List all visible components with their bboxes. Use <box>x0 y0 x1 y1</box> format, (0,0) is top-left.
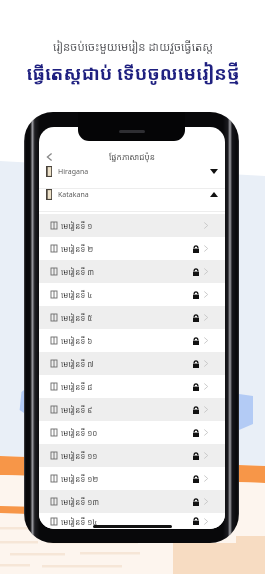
button[interactable]: មេរៀនទី ៩ <box>39 398 225 421</box>
button[interactable]: មេរៀនទី ៧ <box>39 352 225 375</box>
staticText: មេរៀនទី ២ <box>61 243 94 254</box>
button[interactable]: មេរៀនទី ៤ <box>39 283 225 306</box>
staticText: Katakana <box>58 190 89 200</box>
button[interactable]: Back <box>42 149 57 164</box>
staticText: មេរៀនទី ៩ <box>61 404 93 415</box>
button[interactable]: មេរៀនទី ៥ <box>39 306 225 329</box>
staticText: មេរៀនទី ៣ <box>61 266 95 277</box>
button[interactable]: មេរៀនទី ១ <box>39 214 225 237</box>
button[interactable]: មេរៀនទី ៦ <box>39 329 225 352</box>
staticText: មេរៀនទី ១២ <box>61 473 99 484</box>
button[interactable]: មេរៀនទី ១៤ <box>39 513 225 529</box>
button[interactable]: មេរៀនទី ១២ <box>39 467 225 490</box>
staticText: Hiragana <box>58 167 89 177</box>
button[interactable]: Katakana <box>39 189 225 212</box>
staticText: មេរៀនទី ៦ <box>61 335 93 346</box>
button[interactable]: មេរៀនទី ១៣ <box>39 490 225 513</box>
staticText: មេរៀនទី ៨ <box>61 381 93 392</box>
staticText: រៀនចប់ចេះមួយមេរៀន ដាយវួចធ្វើតេស្ត <box>53 39 213 55</box>
button[interactable]: មេរៀនទី ២ <box>39 237 225 260</box>
staticText: មេរៀនទី ៤ <box>61 289 93 300</box>
staticText: មេរៀនទី ១៤ <box>61 516 98 527</box>
staticText: មេរៀនទី ១០ <box>61 427 98 438</box>
staticText: មេរៀនទី ១៣ <box>61 496 100 507</box>
button[interactable]: មេរៀនទី ៣ <box>39 260 225 283</box>
staticText: មេរៀនទី ៧ <box>61 358 94 369</box>
staticText: មេរៀនទី ៥ <box>61 312 93 323</box>
button[interactable]: មេរៀនទី ១០ <box>39 421 225 444</box>
staticText: ផ្នែកភាសាជប៉ុន <box>109 151 155 162</box>
button[interactable]: មេរៀនទី ៨ <box>39 375 225 398</box>
button[interactable]: Hiragana <box>39 166 225 189</box>
staticText: មេរៀនទី ១ <box>61 220 93 231</box>
button[interactable]: មេរៀនទី ១១ <box>39 444 225 467</box>
staticText: មេរៀនទី ១១ <box>61 450 98 461</box>
staticText: ធ្វើតេស្តជាប់ ទើបចូលមេរៀនថ្មី <box>26 60 240 85</box>
